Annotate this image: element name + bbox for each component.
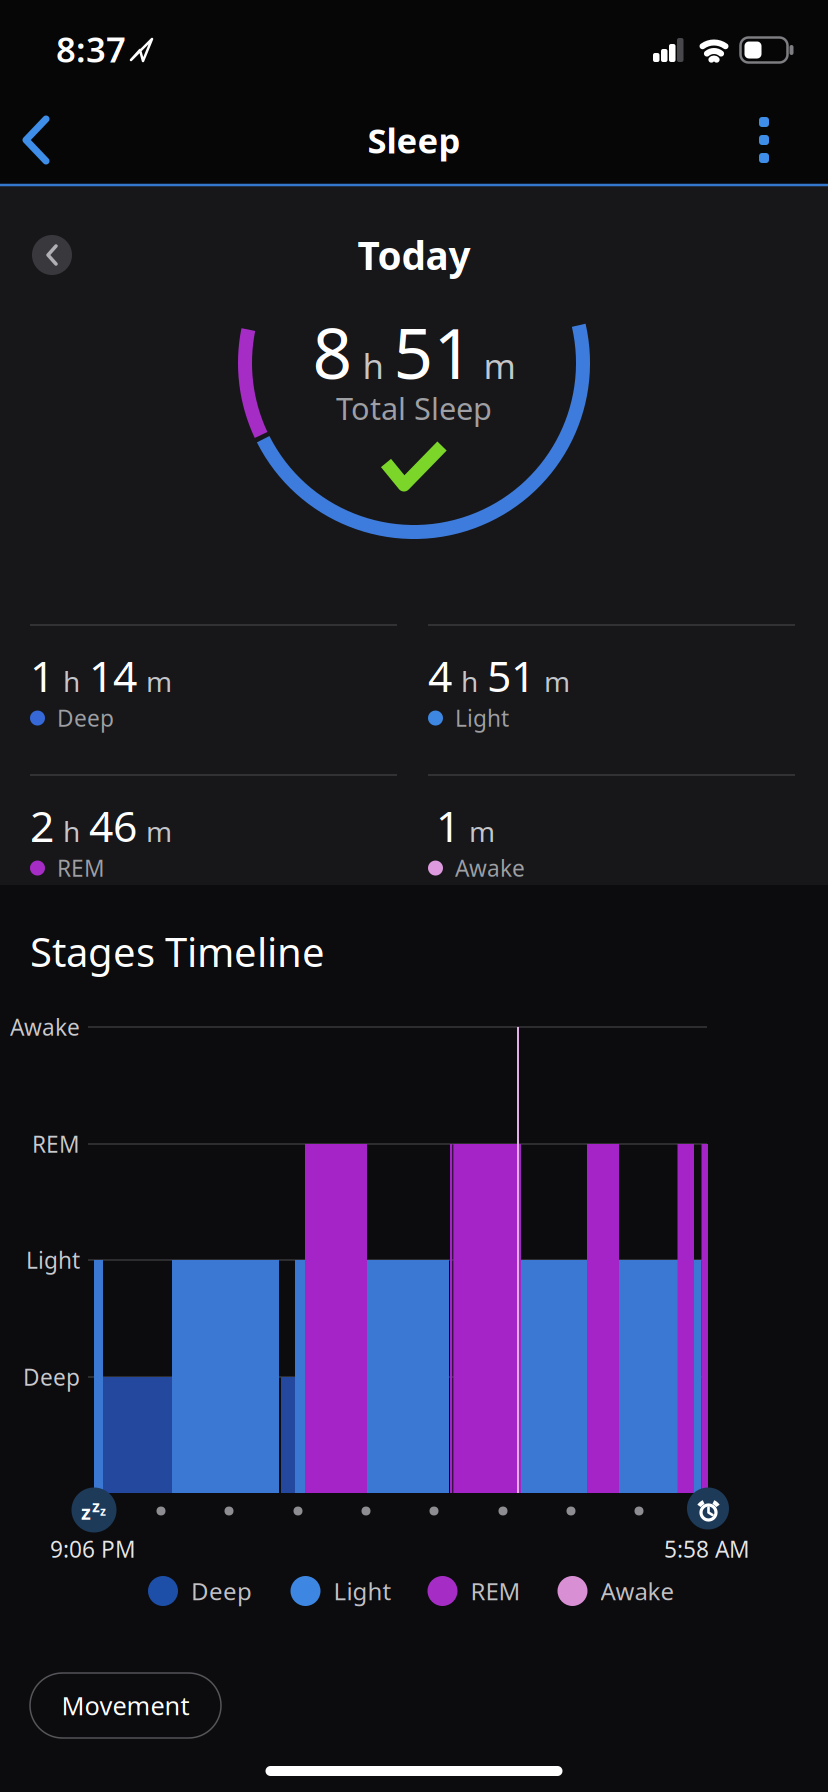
staticText: 9:06 PM: [50, 1534, 136, 1564]
staticText: 4: [428, 647, 452, 704]
staticText: Light: [455, 703, 509, 733]
staticText: h: [63, 812, 80, 850]
staticText: 8:37: [56, 26, 126, 72]
staticText: 8: [312, 306, 352, 398]
staticText: Light: [333, 1575, 391, 1607]
staticText: 14: [89, 647, 137, 704]
staticText: REM: [470, 1575, 520, 1607]
staticText: REM: [57, 853, 105, 883]
staticText: Deep: [57, 703, 114, 733]
staticText: Stages Timeline: [30, 925, 325, 978]
staticText: 1: [30, 647, 54, 704]
staticText: h: [63, 662, 80, 700]
staticText: m: [146, 662, 172, 700]
staticText: 51: [393, 306, 473, 398]
staticText: Deep: [23, 1362, 80, 1392]
staticText: Sleep: [367, 117, 460, 163]
staticText: h: [362, 342, 383, 388]
button[interactable]: Back: [10, 107, 66, 173]
staticText: Today: [357, 229, 470, 281]
staticText: 2: [30, 797, 54, 854]
staticText: Total Sleep: [336, 388, 492, 428]
staticText: z: [81, 1499, 91, 1525]
staticText: 5:58 AM: [664, 1534, 750, 1564]
staticText: Awake: [600, 1575, 674, 1607]
staticText: Deep: [191, 1575, 252, 1607]
staticText: 1: [436, 797, 460, 854]
staticText: 51: [487, 647, 535, 704]
staticText: h: [461, 662, 478, 700]
staticText: Light: [26, 1245, 80, 1275]
staticText: z: [92, 1495, 100, 1517]
button[interactable]: More: [742, 110, 786, 170]
staticText: z: [100, 1503, 106, 1519]
staticText: m: [469, 812, 495, 850]
staticText: Awake: [455, 853, 525, 883]
button[interactable]: Previous day: [32, 235, 72, 275]
staticText: m: [544, 662, 570, 700]
staticText: m: [146, 812, 172, 850]
button[interactable]: Movement: [30, 1673, 221, 1738]
staticText: REM: [32, 1129, 80, 1159]
staticText: m: [483, 342, 515, 388]
staticText: Movement: [61, 1689, 189, 1722]
staticText: Awake: [10, 1012, 80, 1042]
staticText: 46: [89, 797, 137, 854]
